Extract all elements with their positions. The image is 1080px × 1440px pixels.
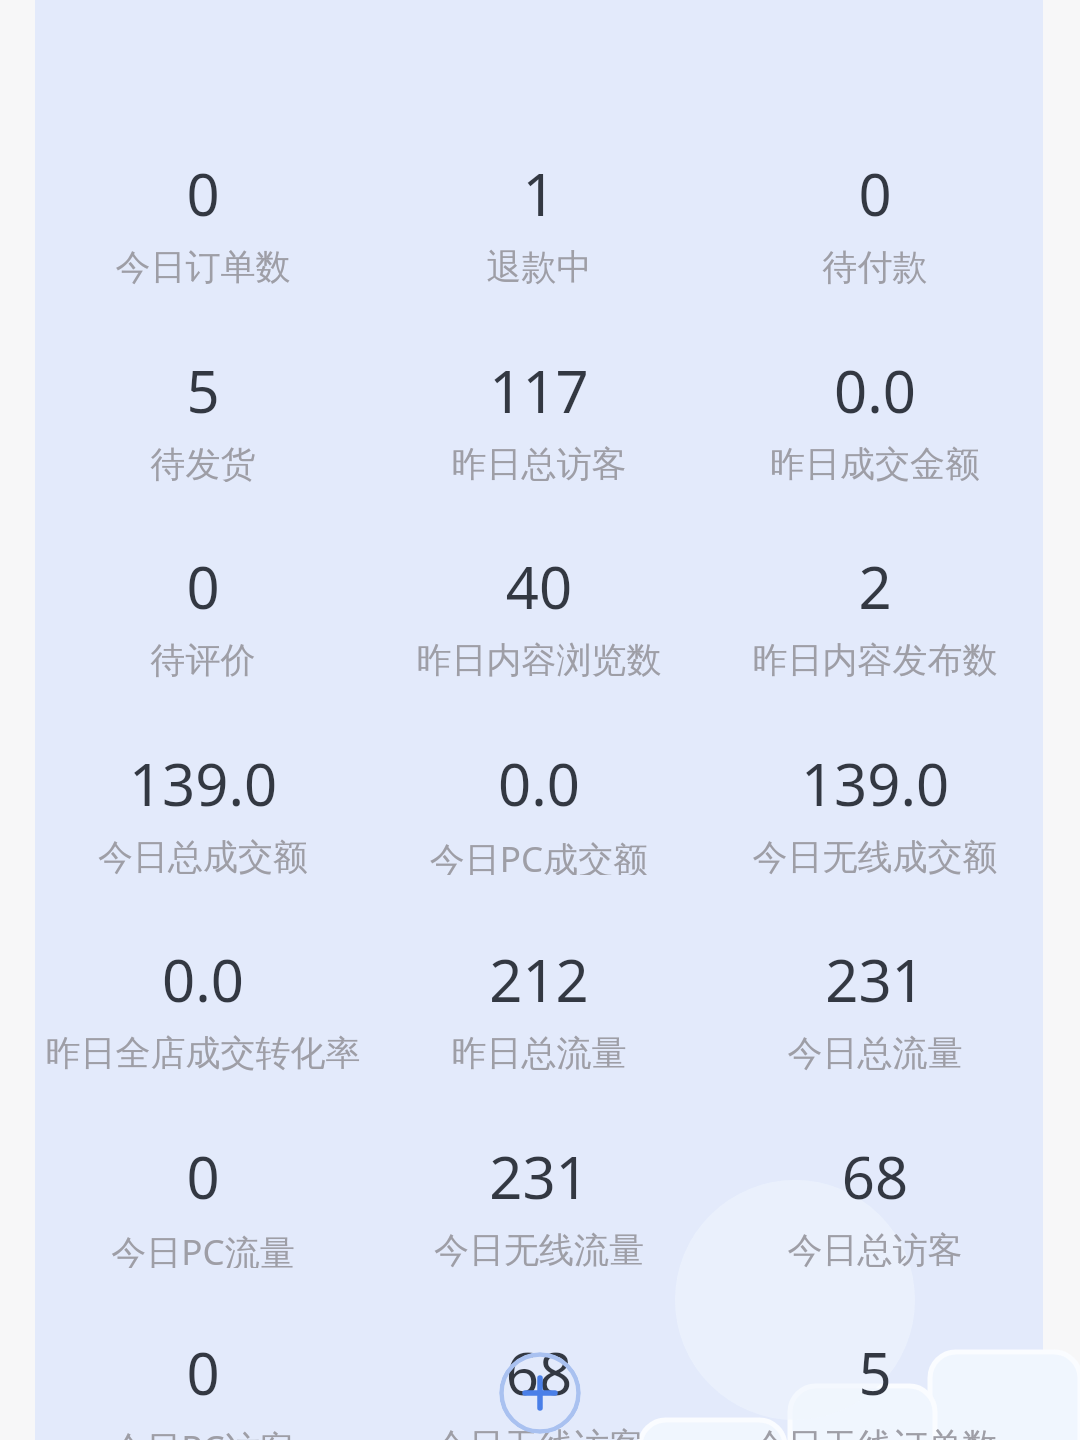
staticText: 今日PC访客 <box>35 1424 371 1440</box>
staticText: 0.0 <box>35 940 371 1004</box>
button[interactable] <box>35 730 371 915</box>
button[interactable] <box>371 926 707 1111</box>
button[interactable] <box>371 337 707 522</box>
staticText: 昨日成交金额 <box>707 442 1043 482</box>
staticText: 0 <box>707 154 1043 218</box>
staticText: 40 <box>371 547 707 611</box>
staticText: 今日无线访客 <box>371 1424 707 1440</box>
staticText: 今日订单数 <box>35 245 371 285</box>
staticText: 昨日总流量 <box>371 1031 707 1071</box>
button[interactable]: 添加 <box>499 1352 581 1434</box>
staticText: 139.0 <box>35 744 371 808</box>
staticText: 5 <box>707 1333 1043 1397</box>
button[interactable] <box>371 140 707 325</box>
staticText: 待发货 <box>35 442 371 482</box>
staticText: 0 <box>35 1137 371 1201</box>
staticText: 0.0 <box>707 351 1043 415</box>
staticText: 昨日内容发布数 <box>707 638 1043 678</box>
staticText: 0 <box>35 154 371 218</box>
staticText: 今日总流量 <box>707 1031 1043 1071</box>
staticText: 0 <box>35 1333 371 1397</box>
staticText: 68 <box>707 1137 1043 1201</box>
button[interactable] <box>707 1123 1043 1308</box>
staticText: 212 <box>371 940 707 1004</box>
staticText: 昨日内容浏览数 <box>371 638 707 678</box>
staticText: 昨日总访客 <box>371 442 707 482</box>
staticText: 今日PC成交额 <box>371 835 707 875</box>
staticText: 231 <box>707 940 1043 1004</box>
staticText: 退款中 <box>371 245 707 285</box>
staticText: 117 <box>371 351 707 415</box>
button[interactable] <box>35 337 371 522</box>
staticText: 5 <box>35 351 371 415</box>
staticText: 231 <box>371 1137 707 1201</box>
staticText: 今日无线流量 <box>371 1228 707 1268</box>
staticText: 今日总成交额 <box>35 835 371 875</box>
button[interactable] <box>35 1123 371 1308</box>
button[interactable] <box>707 337 1043 522</box>
button[interactable] <box>35 140 371 325</box>
button[interactable] <box>707 730 1043 915</box>
staticText: 今日PC流量 <box>35 1228 371 1268</box>
staticText: 1 <box>371 154 707 218</box>
button[interactable] <box>35 1319 371 1440</box>
button[interactable] <box>707 1319 1043 1440</box>
staticText: 今日总访客 <box>707 1228 1043 1268</box>
button[interactable] <box>707 140 1043 325</box>
staticText: 待付款 <box>707 245 1043 285</box>
staticText: 今日无线成交额 <box>707 835 1043 875</box>
button[interactable] <box>371 1123 707 1308</box>
staticText: 139.0 <box>707 744 1043 808</box>
staticText: 0.0 <box>371 744 707 808</box>
staticText: 68 <box>371 1333 707 1397</box>
staticText: 今日无线订单数 <box>707 1424 1043 1440</box>
staticText: 待评价 <box>35 638 371 678</box>
button[interactable] <box>707 533 1043 718</box>
staticText: 0 <box>35 547 371 611</box>
button[interactable] <box>371 730 707 915</box>
button[interactable] <box>35 926 371 1111</box>
staticText: 昨日全店成交转化率 <box>35 1031 371 1071</box>
button[interactable] <box>371 1319 707 1440</box>
button[interactable] <box>35 533 371 718</box>
button[interactable] <box>707 926 1043 1111</box>
staticText: 2 <box>707 547 1043 611</box>
button[interactable] <box>371 533 707 718</box>
